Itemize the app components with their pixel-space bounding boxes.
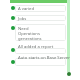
button[interactable] (15, 24, 66, 41)
button[interactable] (15, 58, 66, 66)
staticText: Operations (18, 31, 40, 37)
staticText: Jobs (18, 16, 27, 22)
staticText: A varied (18, 6, 34, 12)
staticText: Auto starts on Base Server (18, 55, 70, 61)
button[interactable] (15, 5, 66, 12)
staticText: generations (18, 36, 42, 42)
button[interactable] (11, 26, 15, 30)
button[interactable] (11, 48, 15, 52)
button[interactable] (11, 16, 15, 20)
button[interactable] (11, 60, 15, 64)
button[interactable] (15, 48, 66, 54)
staticText: All added a report (18, 44, 54, 50)
button[interactable] (15, 15, 66, 21)
staticText: Need (18, 26, 29, 32)
button[interactable] (11, 6, 15, 10)
other: Scroll (67, 72, 71, 76)
